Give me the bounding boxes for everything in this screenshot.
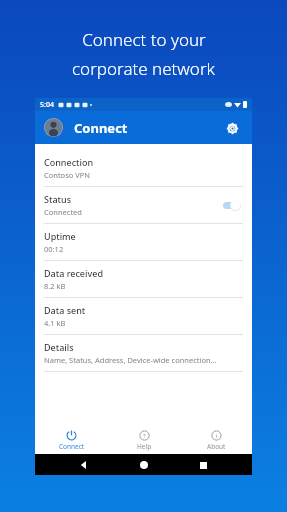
- staticText: Connected: [44, 207, 82, 217]
- button[interactable]: Connect: [35, 427, 108, 454]
- staticText: 00:12: [44, 244, 64, 254]
- staticText: Connect: [59, 442, 85, 451]
- button[interactable]: Connection: [35, 150, 252, 186]
- staticText: Help: [137, 442, 152, 451]
- staticText: About: [207, 442, 226, 451]
- staticText: Uptime: [44, 230, 76, 242]
- button[interactable]: Data received: [35, 261, 252, 297]
- staticText: Data received: [44, 267, 103, 279]
- button[interactable]: Recents: [193, 455, 213, 475]
- staticText: 8.2 kB: [44, 281, 66, 291]
- staticText: Name, Status, Address, Device-wide conne…: [44, 355, 217, 365]
- staticText: Status: [44, 193, 72, 205]
- staticText: ?: [143, 432, 146, 440]
- button[interactable]: Back: [74, 455, 94, 475]
- button[interactable]: Uptime: [35, 224, 252, 260]
- button[interactable]: Settings: [221, 117, 243, 139]
- staticText: 4.1 kB: [44, 318, 66, 328]
- button[interactable]: i: [180, 427, 252, 454]
- staticText: Details: [44, 341, 74, 353]
- staticText: Connection: [44, 156, 94, 168]
- staticText: Connect to your: [82, 28, 206, 51]
- button[interactable]: Account: [44, 118, 63, 137]
- button[interactable]: ?: [108, 427, 180, 454]
- staticText: Connect: [74, 119, 128, 137]
- staticText: corporate network: [72, 57, 215, 80]
- button[interactable]: Data sent: [35, 298, 252, 334]
- button[interactable]: Home: [134, 455, 154, 475]
- button[interactable]: Status: [35, 187, 252, 223]
- staticText: Contoso VPN: [44, 170, 90, 180]
- staticText: 5:04: [40, 100, 54, 110]
- button[interactable]: Status toggle: [221, 199, 243, 211]
- button[interactable]: Details: [35, 335, 252, 371]
- staticText: Data sent: [44, 304, 86, 316]
- staticText: i: [216, 432, 218, 440]
